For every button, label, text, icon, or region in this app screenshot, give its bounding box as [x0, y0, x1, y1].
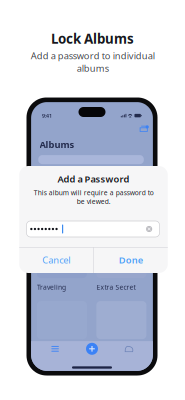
button[interactable]: New Album [140, 126, 150, 134]
staticText: Albums [40, 138, 75, 150]
staticText: Extra Secret [96, 283, 135, 292]
button[interactable]: Done [93, 247, 168, 273]
button[interactable]: Library [43, 342, 67, 356]
staticText: Done [119, 254, 143, 266]
staticText: Traveling [37, 283, 66, 292]
button[interactable]: Extra Secret [96, 282, 146, 339]
staticText: Add a password to individual albums [30, 49, 154, 74]
button[interactable]: iCloud [117, 342, 141, 356]
button[interactable]: Cancel [19, 247, 93, 273]
staticText: Cancel [42, 254, 70, 266]
staticText: Add a Password [57, 173, 129, 185]
staticText: This album will require a password to be… [33, 188, 153, 206]
button[interactable]: Add [80, 342, 104, 356]
staticText: Lock Albums [51, 30, 134, 47]
staticText: 9:41 [42, 112, 52, 119]
button[interactable]: Traveling [37, 282, 87, 339]
